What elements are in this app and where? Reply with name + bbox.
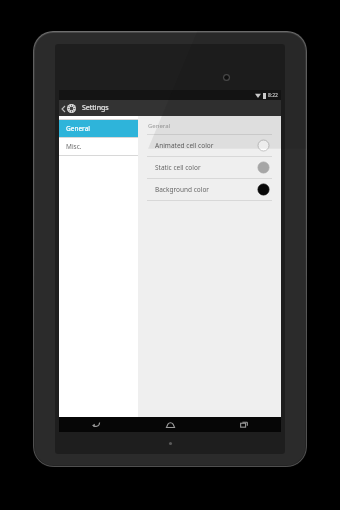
staticText: Background color	[155, 185, 258, 194]
button[interactable]: Home	[133, 417, 207, 432]
button[interactable]: General	[59, 120, 138, 137]
staticText: Misc.	[66, 142, 82, 151]
staticText: General	[66, 124, 90, 133]
staticText: Static cell color	[155, 163, 258, 172]
button[interactable]: Misc.	[59, 138, 138, 155]
button[interactable]: Recent apps	[207, 417, 281, 432]
button[interactable]: Background color	[138, 179, 281, 200]
button[interactable]: Back	[59, 417, 133, 432]
staticText: Animated cell color	[155, 141, 258, 150]
button[interactable]: Navigate up	[59, 100, 79, 116]
staticText: Settings	[82, 103, 109, 113]
staticText: 8:22	[268, 92, 278, 99]
staticText: General	[148, 122, 171, 130]
button[interactable]: Static cell color	[138, 157, 281, 178]
button[interactable]: Animated cell color	[138, 135, 281, 156]
